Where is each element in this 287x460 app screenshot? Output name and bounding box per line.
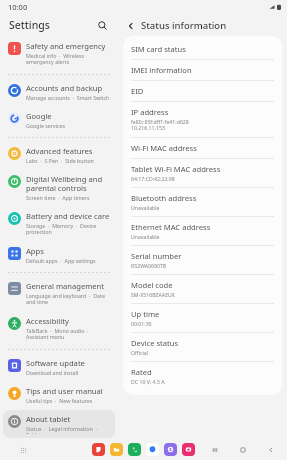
staticText: Ethernet MAC address xyxy=(131,222,211,232)
staticText: Advanced features xyxy=(26,146,93,156)
button[interactable]: Bluetooth address xyxy=(123,188,282,216)
button[interactable]: Recents xyxy=(209,444,221,456)
button[interactable]: Device status xyxy=(123,333,282,361)
staticText: Unavailable xyxy=(131,204,160,211)
button[interactable]: Battery and device care xyxy=(3,207,115,240)
staticText: 00:01:30 xyxy=(131,320,152,327)
button[interactable]: IP address xyxy=(123,102,282,137)
button[interactable]: Back xyxy=(265,444,277,456)
button[interactable]: Rated xyxy=(123,362,282,390)
button[interactable]: Home xyxy=(237,444,249,456)
button[interactable]: Safety and emergency xyxy=(3,37,115,70)
staticText: Language and keyboard · Date and time xyxy=(26,292,111,306)
button[interactable]: All apps xyxy=(16,443,30,457)
staticText: SIM card status xyxy=(131,44,186,54)
button[interactable]: Tips and user manual xyxy=(3,382,115,408)
staticText: Apps xyxy=(26,246,44,256)
button[interactable]: App 4 xyxy=(164,443,177,456)
staticText: Battery and device care xyxy=(26,211,110,221)
staticText: Google xyxy=(26,111,52,121)
button[interactable]: Ethernet MAC address xyxy=(123,217,282,245)
button[interactable]: Up time xyxy=(123,304,282,332)
staticText: TalkBack · Mono audio · Assistant menu xyxy=(26,327,111,341)
button[interactable]: Model code xyxy=(123,275,282,303)
staticText: Serial number xyxy=(131,251,182,261)
staticText: Safety and emergency xyxy=(26,41,106,51)
staticText: Google services xyxy=(26,122,66,129)
staticText: 64:17:CD:42:22:98 xyxy=(131,175,175,182)
button[interactable]: SIM card status xyxy=(123,39,282,59)
staticText: Download and install xyxy=(26,369,79,376)
staticText: fe80::85f:dff1:fe41:d628 10.216.11.153 xyxy=(131,118,189,132)
staticText: EID xyxy=(131,86,144,96)
staticText: Accessibility xyxy=(26,316,69,326)
staticText: Accounts and backup xyxy=(26,83,103,93)
button[interactable]: Accessibility xyxy=(3,312,115,345)
staticText: Rated xyxy=(131,367,152,377)
staticText: Useful tips · New features xyxy=(26,397,93,404)
staticText: General management xyxy=(26,281,105,291)
staticText: DC 10 V; 4.5 A xyxy=(131,378,165,385)
button[interactable]: Software update xyxy=(3,354,115,380)
button[interactable]: About tablet xyxy=(3,410,115,438)
button[interactable]: Accounts and backup xyxy=(3,79,115,105)
staticText: Digital Wellbeing and parental controls xyxy=(26,174,111,193)
staticText: Bluetooth address xyxy=(131,193,197,203)
staticText: Tips and user manual xyxy=(26,386,103,396)
staticText: Official xyxy=(131,349,149,356)
staticText: Unavailable xyxy=(131,233,160,240)
staticText: Status · Legal information · Tablet name xyxy=(26,425,111,434)
staticText: Tablet Wi-Fi MAC address xyxy=(131,164,221,174)
staticText: Device status xyxy=(131,338,179,348)
button[interactable]: General management xyxy=(3,277,115,310)
button[interactable]: IMEI information xyxy=(123,60,282,80)
staticText: Wi-Fi MAC address xyxy=(131,143,197,153)
staticText: Manage accounts · Smart Switch xyxy=(26,94,110,101)
staticText: Model code xyxy=(131,280,173,290)
button[interactable]: App 1 xyxy=(110,443,123,456)
button[interactable]: Search xyxy=(94,17,110,33)
staticText: Status information xyxy=(141,19,227,32)
staticText: Labs · S Pen · Side button xyxy=(26,157,94,164)
staticText: Medical info · Wireless emergency alerts xyxy=(26,52,111,66)
staticText: IP address xyxy=(131,107,169,117)
button[interactable]: Tablet Wi-Fi MAC address xyxy=(123,159,282,187)
button[interactable]: Apps xyxy=(3,242,115,268)
staticText: R52WA0690TB xyxy=(131,262,167,269)
button[interactable]: Digital Wellbeing and parental controls xyxy=(3,170,115,205)
button[interactable]: Google xyxy=(3,107,115,133)
button[interactable]: Serial number xyxy=(123,246,282,274)
button[interactable]: EID xyxy=(123,81,282,101)
staticText: 10:00 xyxy=(8,2,28,12)
button[interactable]: App 5 xyxy=(182,443,195,456)
staticText: Settings xyxy=(9,18,50,32)
staticText: Storage · Memory · Device protection xyxy=(26,222,111,236)
button[interactable]: Advanced features xyxy=(3,142,115,168)
staticText: About tablet xyxy=(26,414,71,424)
button[interactable]: App 0 xyxy=(92,443,105,456)
staticText: Software update xyxy=(26,358,85,368)
staticText: IMEI information xyxy=(131,65,192,75)
button[interactable]: App 3 xyxy=(146,443,159,456)
staticText: SM-X516BZAAEUX xyxy=(131,291,175,298)
staticText: Default apps · App settings xyxy=(26,257,96,264)
button[interactable]: App 2 xyxy=(128,443,141,456)
staticText: Screen time · App timers xyxy=(26,194,90,201)
button[interactable]: Wi-Fi MAC address xyxy=(123,138,282,158)
staticText: Up time xyxy=(131,309,160,319)
button[interactable]: Back xyxy=(123,18,138,33)
